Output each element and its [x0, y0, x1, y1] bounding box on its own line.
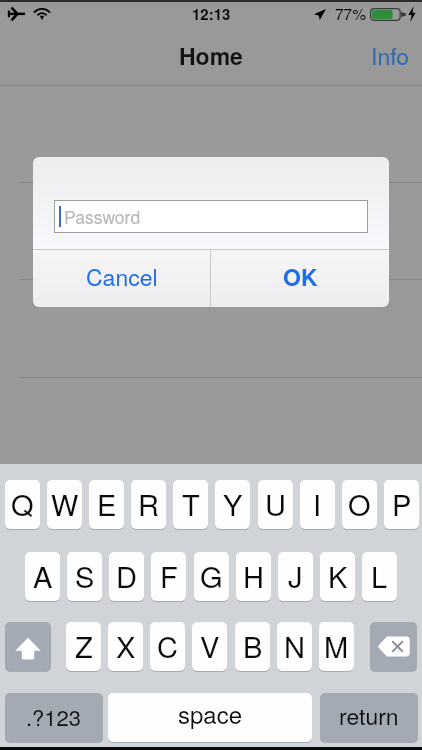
button[interactable]: S: [67, 552, 102, 601]
button[interactable]: N: [277, 622, 312, 671]
button[interactable]: C: [150, 622, 185, 671]
button[interactable]: E: [89, 480, 124, 529]
button[interactable]: Backspace: [370, 622, 417, 671]
staticText: T: [182, 483, 200, 525]
staticText: R: [138, 483, 159, 525]
staticText: X: [116, 625, 136, 667]
staticText: A: [33, 555, 53, 597]
button[interactable]: R: [131, 480, 166, 529]
button[interactable]: W: [47, 480, 82, 529]
button[interactable]: A: [25, 552, 60, 601]
button[interactable]: J: [278, 552, 313, 601]
button[interactable]: X: [108, 622, 143, 671]
staticText: G: [200, 555, 223, 597]
staticText: D: [116, 555, 137, 597]
button[interactable]: P: [384, 480, 419, 529]
button[interactable]: Shift: [5, 622, 51, 671]
button[interactable]: F: [151, 552, 186, 601]
staticText: return: [339, 699, 399, 732]
button[interactable]: Z: [66, 622, 101, 671]
button[interactable]: H: [236, 552, 271, 601]
button[interactable]: O: [342, 480, 377, 529]
staticText: 77%: [335, 2, 367, 24]
button[interactable]: OK: [211, 250, 389, 307]
staticText: C: [157, 625, 178, 667]
button[interactable]: V: [192, 622, 227, 671]
staticText: Cancel: [86, 260, 158, 293]
staticText: space: [178, 696, 243, 730]
staticText: F: [160, 555, 178, 597]
button[interactable]: G: [194, 552, 229, 601]
button[interactable]: L: [362, 552, 397, 601]
button[interactable]: U: [258, 480, 293, 529]
staticText: Home: [179, 39, 243, 72]
staticText: Q: [11, 483, 34, 525]
staticText: B: [243, 625, 263, 667]
button[interactable]: Y: [215, 480, 250, 529]
staticText: O: [348, 483, 371, 525]
button[interactable]: Info: [359, 33, 422, 78]
staticText: Password: [64, 204, 141, 229]
staticText: P: [392, 483, 412, 525]
button[interactable]: Q: [5, 480, 40, 529]
staticText: U: [265, 483, 286, 525]
staticText: Info: [371, 39, 410, 72]
staticText: S: [75, 555, 95, 597]
staticText: N: [284, 625, 305, 667]
button[interactable]: B: [235, 622, 270, 671]
button[interactable]: .?123: [5, 693, 103, 742]
staticText: M: [324, 625, 349, 667]
staticText: I: [313, 483, 322, 525]
button[interactable]: D: [109, 552, 144, 601]
button[interactable]: I: [300, 480, 335, 529]
button[interactable]: return: [320, 693, 418, 742]
button[interactable]: T: [173, 480, 208, 529]
staticText: OK: [283, 260, 318, 293]
staticText: H: [243, 555, 264, 597]
staticText: W: [51, 483, 79, 525]
button[interactable]: Cancel: [33, 250, 210, 307]
button[interactable]: space: [108, 693, 312, 742]
button[interactable]: M: [319, 622, 354, 671]
staticText: E: [97, 483, 117, 525]
staticText: J: [288, 555, 303, 597]
button[interactable]: K: [320, 552, 355, 601]
staticText: .?123: [26, 701, 82, 733]
staticText: L: [371, 555, 388, 597]
staticText: 12:13: [192, 3, 231, 24]
staticText: V: [200, 625, 220, 667]
staticText: K: [328, 555, 348, 597]
staticText: Y: [223, 483, 243, 525]
staticText: Z: [75, 625, 93, 667]
